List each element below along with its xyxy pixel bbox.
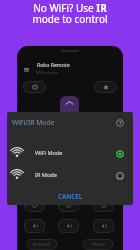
button[interactable]: Power xyxy=(23,81,46,93)
button[interactable]: Star xyxy=(93,198,114,212)
staticText: IR Mode xyxy=(35,171,57,179)
staticText: CANCEL xyxy=(58,192,83,200)
button[interactable]: Options xyxy=(58,198,79,212)
button[interactable]: Up xyxy=(60,96,79,112)
button[interactable]: Home xyxy=(94,81,117,93)
button[interactable]: Volume up xyxy=(93,219,114,233)
staticText: MY bedroom xyxy=(36,70,58,75)
button[interactable]: Menu xyxy=(22,65,31,74)
staticText: WiFi Mode xyxy=(35,149,63,157)
staticText: ? xyxy=(119,119,122,127)
button[interactable]: Mute xyxy=(58,219,79,233)
staticText: PRIVATE xyxy=(92,242,105,247)
staticText: Roku Remote xyxy=(37,61,70,68)
button[interactable]: CANCEL xyxy=(52,188,89,204)
button[interactable]: IR Mode xyxy=(7,164,133,186)
staticText: WiFi/IR Mode xyxy=(12,118,55,127)
button[interactable]: WiFi Mode xyxy=(7,142,133,164)
button[interactable]: Back xyxy=(24,198,45,212)
button[interactable]: Help xyxy=(116,119,124,127)
button[interactable]: Volume down xyxy=(24,219,45,233)
staticText: No WiFi? Use IR mode to control xyxy=(32,1,108,26)
button[interactable]: PRIVATE xyxy=(83,239,113,250)
staticText: KEYBOARD xyxy=(33,242,51,247)
button[interactable]: KEYBOARD xyxy=(27,239,57,250)
